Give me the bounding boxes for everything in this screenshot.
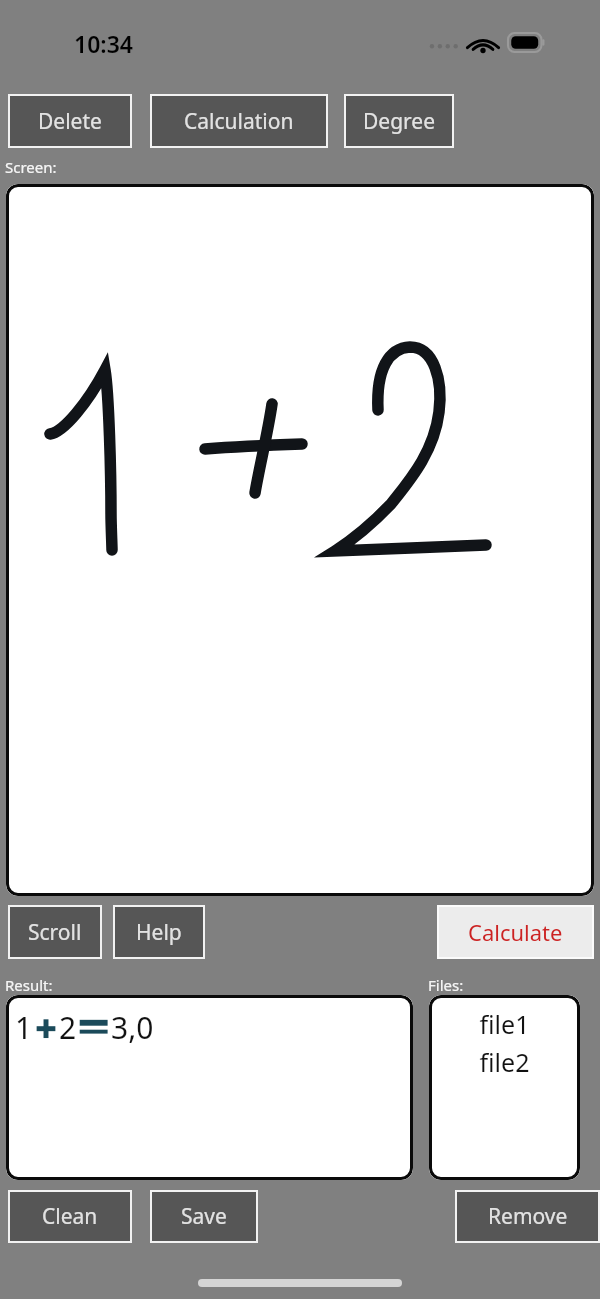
button[interactable]: Remove: [455, 1190, 600, 1243]
button[interactable]: Calculate: [437, 905, 594, 959]
button[interactable]: Help: [113, 905, 205, 959]
button[interactable]: Clean: [8, 1190, 132, 1243]
staticText: Files:: [428, 975, 464, 995]
staticText: 1: [15, 1007, 33, 1048]
staticText: Screen:: [5, 157, 57, 177]
staticText: Remove: [488, 1202, 568, 1231]
button[interactable]: Calculation: [150, 94, 328, 148]
button[interactable]: file1: [429, 1007, 580, 1041]
staticText: Help: [136, 918, 182, 947]
staticText: Scroll: [28, 918, 82, 947]
button[interactable]: Save: [150, 1190, 258, 1243]
button[interactable]: Scroll: [8, 905, 102, 959]
button[interactable]: file2: [429, 1045, 580, 1079]
staticText: 2: [59, 1007, 77, 1048]
button[interactable]: [6, 184, 594, 896]
staticText: Clean: [42, 1202, 98, 1231]
staticText: Result:: [5, 975, 53, 995]
button[interactable]: Delete: [8, 94, 132, 148]
staticText: Delete: [38, 107, 102, 136]
staticText: Calculation: [184, 107, 294, 136]
staticText: 3,0: [111, 1007, 154, 1048]
staticText: Degree: [363, 107, 436, 136]
button[interactable]: file1: [429, 995, 580, 1180]
staticText: 10:34: [74, 28, 133, 59]
button[interactable]: 1: [6, 995, 413, 1180]
staticText: Calculate: [468, 917, 563, 947]
other: Home indicator: [198, 1279, 402, 1287]
staticText: Save: [181, 1202, 227, 1231]
button[interactable]: Degree: [344, 94, 454, 148]
